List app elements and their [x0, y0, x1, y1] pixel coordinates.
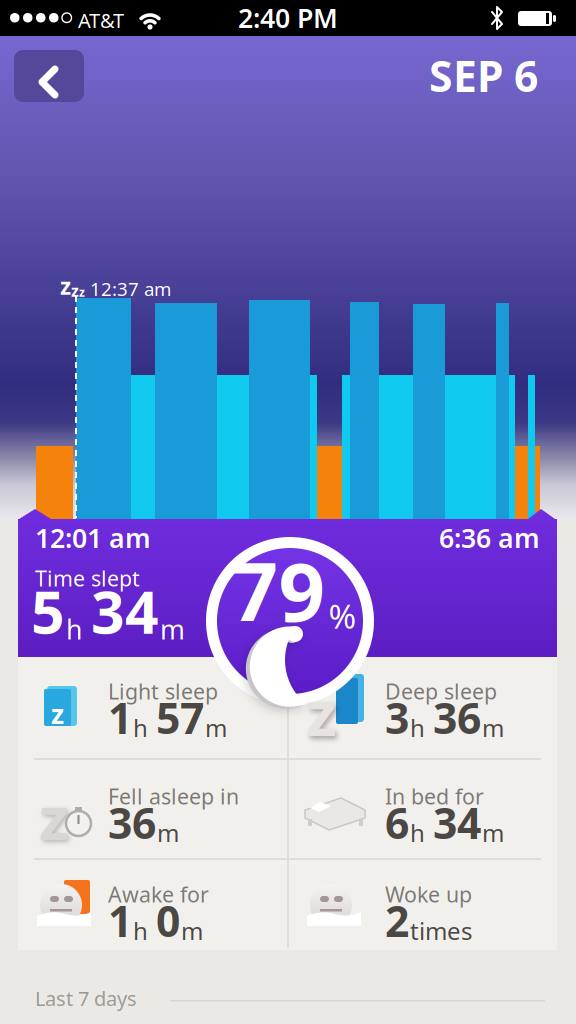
staticText: AT&T [78, 7, 124, 34]
staticText: 36 [108, 794, 156, 851]
staticText: 1 [108, 689, 132, 746]
staticText: SEP 6 [429, 47, 538, 104]
staticText: m [482, 817, 504, 849]
staticText: 12:37 am [85, 276, 171, 301]
staticText: m [181, 915, 203, 947]
staticText: z [71, 280, 79, 301]
staticText: 79 [231, 536, 325, 644]
staticText: z [306, 670, 337, 753]
staticText: z [60, 271, 71, 301]
staticText: % [328, 594, 356, 638]
staticText: Fell asleep in [108, 782, 239, 810]
staticText: 3 [385, 689, 409, 746]
staticText: h [410, 712, 425, 744]
staticText: 5 [31, 572, 65, 650]
staticText: m [157, 817, 179, 849]
staticText: Deep sleep [385, 677, 497, 705]
staticText: h [133, 712, 148, 744]
staticText: h [133, 915, 148, 947]
staticText: z [79, 284, 85, 300]
staticText: z [51, 696, 64, 731]
staticText: m [205, 712, 227, 744]
staticText: times [410, 915, 472, 947]
staticText: Time slept [35, 564, 140, 592]
staticText: z [39, 777, 69, 857]
staticText: Woke up [385, 880, 472, 908]
staticText: 0 [156, 892, 180, 949]
staticText: Last 7 days [35, 985, 137, 1012]
staticText: 2 [385, 892, 409, 949]
staticText: 6 [385, 794, 409, 851]
staticText: 1 [108, 892, 132, 949]
staticText: 34 [91, 572, 159, 650]
staticText: m [160, 611, 185, 647]
button[interactable]: Back [14, 50, 84, 102]
staticText: 34 [433, 794, 481, 851]
staticText: h [410, 817, 425, 849]
staticText: Light sleep [108, 677, 218, 705]
staticText: Awake for [108, 880, 209, 908]
staticText: 36 [433, 689, 481, 746]
staticText: 57 [156, 689, 204, 746]
staticText: 12:01 am [35, 520, 151, 555]
staticText: 6:36 am [439, 520, 540, 555]
staticText: 2:40 PM [238, 0, 338, 35]
staticText: m [482, 712, 504, 744]
staticText: In bed for [385, 782, 484, 810]
staticText: h [66, 611, 82, 647]
